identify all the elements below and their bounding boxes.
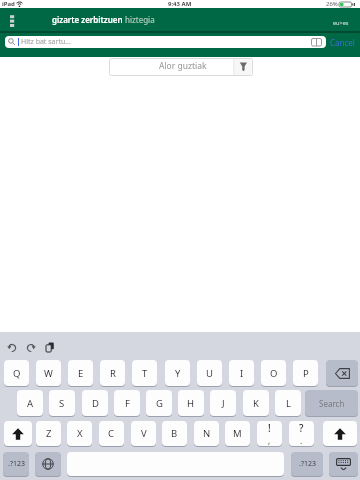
staticText: Q	[13, 367, 21, 380]
staticText: Search	[319, 398, 345, 409]
button[interactable]: G	[146, 390, 172, 416]
staticText: L	[286, 397, 291, 410]
staticText: Alor guztiak	[159, 60, 207, 72]
button[interactable]	[329, 452, 358, 476]
staticText: W	[44, 367, 53, 380]
button[interactable]	[7, 343, 18, 353]
staticText: G	[156, 397, 163, 410]
button[interactable]: Y	[165, 360, 190, 386]
button[interactable]: K	[243, 390, 269, 416]
staticText: .?123	[8, 459, 25, 469]
staticText: J	[222, 397, 225, 410]
button[interactable]: Cancel	[327, 36, 357, 48]
staticText: .	[300, 435, 303, 446]
button[interactable]: Z	[36, 421, 61, 446]
button[interactable]: X	[67, 421, 92, 446]
staticText: V	[141, 427, 147, 440]
staticText: H	[187, 397, 195, 410]
button[interactable]: I	[229, 360, 254, 386]
button[interactable]	[35, 452, 61, 476]
staticText: S	[59, 397, 65, 410]
button[interactable]: L	[275, 390, 301, 416]
staticText: !	[268, 421, 271, 435]
button[interactable]: C	[99, 421, 124, 446]
staticText: Y	[175, 367, 181, 380]
staticText: eu>es	[333, 19, 349, 26]
staticText: T	[142, 367, 148, 380]
button[interactable]: H	[178, 390, 204, 416]
staticText: X	[77, 427, 83, 440]
staticText: U	[206, 367, 213, 380]
button[interactable]: Q	[4, 360, 29, 386]
staticText: hiztegia	[125, 14, 155, 25]
staticText: gizarte zerbitzuen	[52, 14, 125, 25]
staticText: Cancel	[330, 37, 355, 48]
staticText: C	[108, 427, 115, 440]
staticText: 26%	[326, 0, 338, 8]
staticText: Hitz bat sartu...	[21, 37, 71, 47]
staticText: 9:43 AM	[168, 0, 192, 8]
button[interactable]: eu>es	[326, 16, 356, 28]
button[interactable]: U	[197, 360, 222, 386]
staticText: E	[78, 367, 84, 380]
button[interactable]	[45, 342, 55, 353]
button[interactable]	[109, 58, 234, 76]
button[interactable]: B	[162, 421, 187, 446]
staticText: Z	[46, 427, 52, 440]
button[interactable]: N	[194, 421, 219, 446]
staticText: N	[203, 427, 211, 440]
button[interactable]	[4, 421, 32, 446]
button[interactable]: .?123	[291, 452, 323, 476]
staticText: B	[171, 427, 178, 440]
button[interactable]: M	[225, 421, 250, 446]
button[interactable]: R	[100, 360, 125, 386]
button[interactable]: T	[132, 360, 157, 386]
button[interactable]	[323, 421, 357, 446]
button[interactable]: O	[261, 360, 286, 386]
button[interactable]: A	[17, 390, 43, 416]
button[interactable]	[326, 360, 358, 386]
button[interactable]: F	[114, 390, 140, 416]
staticText: ,	[268, 435, 271, 446]
button[interactable]	[6, 12, 20, 29]
button[interactable]: Search	[305, 390, 358, 416]
staticText: F	[125, 397, 130, 410]
button[interactable]: J	[210, 390, 236, 416]
button[interactable]: W	[36, 360, 61, 386]
button[interactable]: ?	[289, 421, 314, 446]
staticText: K	[253, 397, 259, 410]
staticText: D	[92, 397, 99, 410]
button[interactable]	[5, 36, 326, 48]
button[interactable]: S	[49, 390, 75, 416]
staticText: P	[303, 367, 309, 380]
staticText: ?	[299, 421, 304, 435]
staticText: iPad	[2, 0, 15, 8]
button[interactable]: !	[257, 421, 282, 446]
button[interactable]	[234, 58, 253, 76]
staticText: R	[110, 367, 116, 380]
staticText: O	[270, 367, 278, 380]
button[interactable]: .?123	[3, 452, 29, 476]
staticText: .?123	[299, 459, 316, 469]
button[interactable]: E	[68, 360, 93, 386]
button[interactable]: V	[131, 421, 156, 446]
staticText: I	[240, 367, 244, 380]
staticText: M	[233, 427, 242, 440]
button[interactable]: P	[293, 360, 318, 386]
staticText: A	[27, 397, 34, 410]
button[interactable]	[25, 343, 36, 353]
button[interactable]: D	[82, 390, 108, 416]
